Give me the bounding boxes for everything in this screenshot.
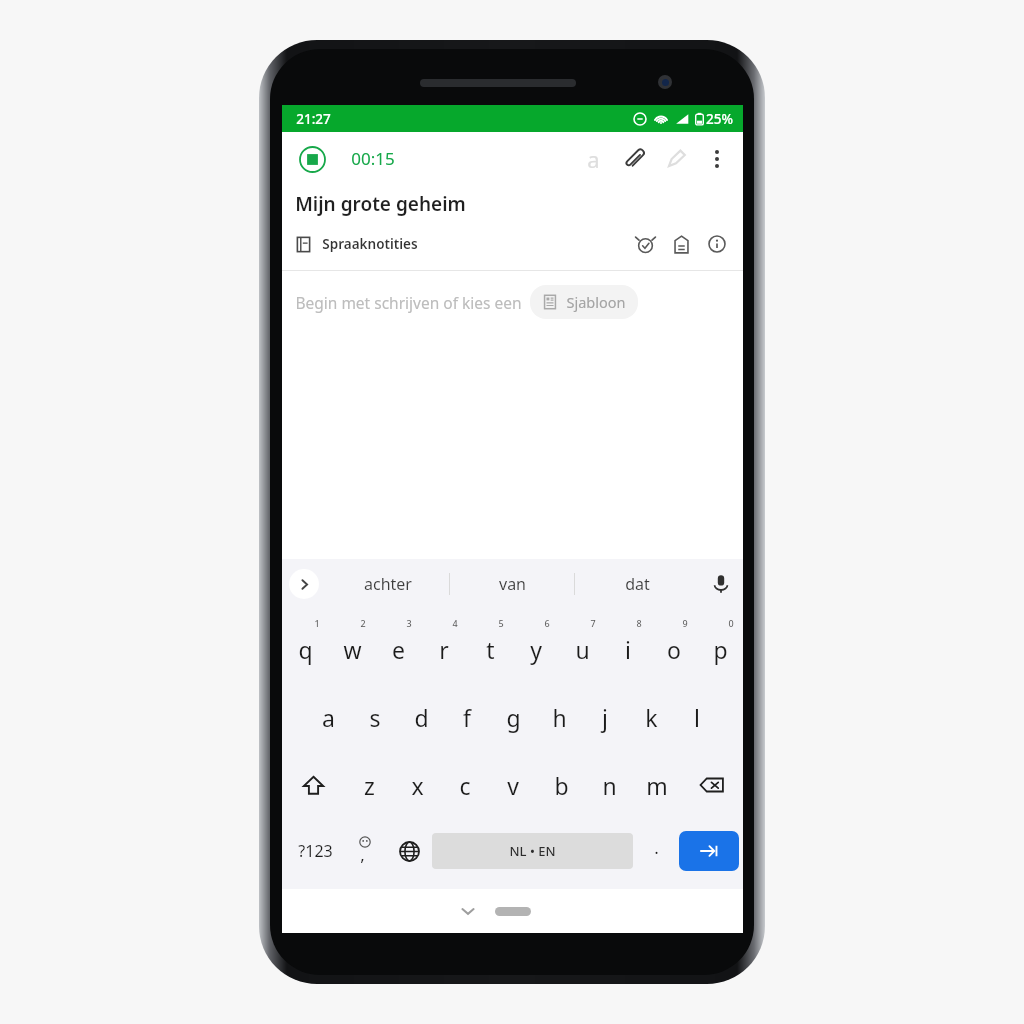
staticText: c (459, 770, 471, 801)
button[interactable]: 2 (329, 609, 375, 683)
button[interactable]: k (628, 683, 674, 751)
button[interactable]: l (674, 683, 720, 751)
button[interactable]: Expand toolbar (282, 559, 326, 609)
button[interactable]: 9 (651, 609, 697, 683)
button[interactable]: dat (575, 559, 699, 609)
staticText: t (486, 634, 495, 665)
staticText: a (587, 144, 600, 174)
button[interactable]: x (393, 751, 441, 819)
staticText: dat (625, 573, 650, 595)
staticText: van (499, 573, 526, 595)
button[interactable]: 5 (467, 609, 513, 683)
button[interactable]: 1 (282, 609, 329, 683)
staticText: j (602, 702, 608, 733)
staticText: g (506, 702, 521, 733)
staticText: 4 (452, 617, 458, 629)
button[interactable]: van (450, 559, 574, 609)
button[interactable]: Home (495, 907, 531, 916)
staticText: 9 (682, 617, 688, 629)
staticText: r (439, 634, 449, 665)
staticText: p (713, 634, 728, 665)
staticText: d (414, 702, 429, 733)
staticText: NL • EN (509, 842, 556, 860)
staticText: l (694, 702, 700, 733)
staticText: o (667, 634, 681, 665)
button[interactable]: Stop recording (293, 140, 331, 178)
staticText: 7 (590, 617, 596, 629)
staticText: Begin met schrijven of kies een (295, 292, 522, 313)
button[interactable]: g (490, 683, 536, 751)
staticText: q (298, 634, 313, 665)
staticText: Spraaknotities (322, 235, 418, 253)
staticText: , (360, 843, 365, 866)
staticText: f (463, 702, 471, 733)
button[interactable]: s (352, 683, 398, 751)
button[interactable]: m (633, 751, 681, 819)
button[interactable]: Draw (655, 138, 697, 180)
staticText: y (530, 634, 542, 665)
staticText: h (552, 702, 567, 733)
button[interactable]: a (305, 683, 352, 751)
button[interactable]: ?123 (286, 819, 344, 883)
staticText: 3 (406, 617, 412, 629)
button[interactable]: 6 (513, 609, 559, 683)
button[interactable]: NL • EN (432, 833, 633, 869)
staticText: 25% (706, 110, 733, 128)
button[interactable]: . (633, 819, 679, 883)
staticText: e (392, 634, 405, 665)
button[interactable]: Shift (282, 751, 345, 819)
button[interactable]: Voice input (699, 559, 743, 609)
staticText: i (625, 634, 631, 665)
button[interactable]: d (398, 683, 444, 751)
staticText: 6 (544, 617, 550, 629)
staticText: 2 (360, 617, 366, 629)
staticText: 21:27 (296, 110, 331, 128)
button[interactable]: Attach (613, 138, 655, 180)
button[interactable]: Next field (679, 831, 739, 871)
button[interactable]: z (345, 751, 393, 819)
button[interactable]: 4 (421, 609, 467, 683)
button[interactable]: achter (326, 559, 449, 609)
staticText: . (654, 836, 659, 859)
staticText: k (645, 702, 658, 733)
staticText: w (343, 634, 362, 665)
button[interactable]: Backspace (681, 751, 743, 819)
staticText: ?123 (298, 840, 333, 862)
staticText: z (364, 770, 375, 801)
staticText: Mijn grote geheim (295, 191, 466, 217)
button[interactable]: c (441, 751, 489, 819)
button[interactable]: Reminder (627, 226, 663, 262)
staticText: n (602, 770, 617, 801)
staticText: a (322, 702, 335, 733)
staticText: 8 (636, 617, 642, 629)
button[interactable]: 3 (375, 609, 421, 683)
button[interactable]: Info (699, 226, 735, 262)
button[interactable]: b (537, 751, 585, 819)
staticText: b (554, 770, 569, 801)
button[interactable]: Emoji and comma (344, 819, 386, 883)
button[interactable]: Tags (663, 226, 699, 262)
button[interactable]: More options (697, 139, 737, 179)
button[interactable]: f (444, 683, 490, 751)
button[interactable]: Sjabloon (530, 285, 638, 319)
button[interactable]: 7 (559, 609, 605, 683)
staticText: 00:15 (351, 147, 395, 170)
button[interactable]: Change language (386, 819, 432, 883)
button[interactable]: 8 (605, 609, 651, 683)
staticText: 0 (728, 617, 734, 629)
button[interactable]: Text formatting (573, 139, 613, 179)
button[interactable]: 0 (697, 609, 743, 683)
staticText: u (575, 634, 590, 665)
button[interactable]: n (585, 751, 633, 819)
staticText: 1 (314, 617, 320, 629)
staticText: Sjabloon (566, 292, 626, 312)
button[interactable]: j (582, 683, 628, 751)
button[interactable]: h (536, 683, 582, 751)
staticText: s (369, 702, 381, 733)
button[interactable]: Hide keyboard (451, 894, 485, 928)
staticText: m (646, 770, 668, 801)
staticText: x (411, 770, 424, 801)
staticText: achter (364, 573, 412, 595)
staticText: 5 (498, 617, 504, 629)
button[interactable]: v (489, 751, 537, 819)
